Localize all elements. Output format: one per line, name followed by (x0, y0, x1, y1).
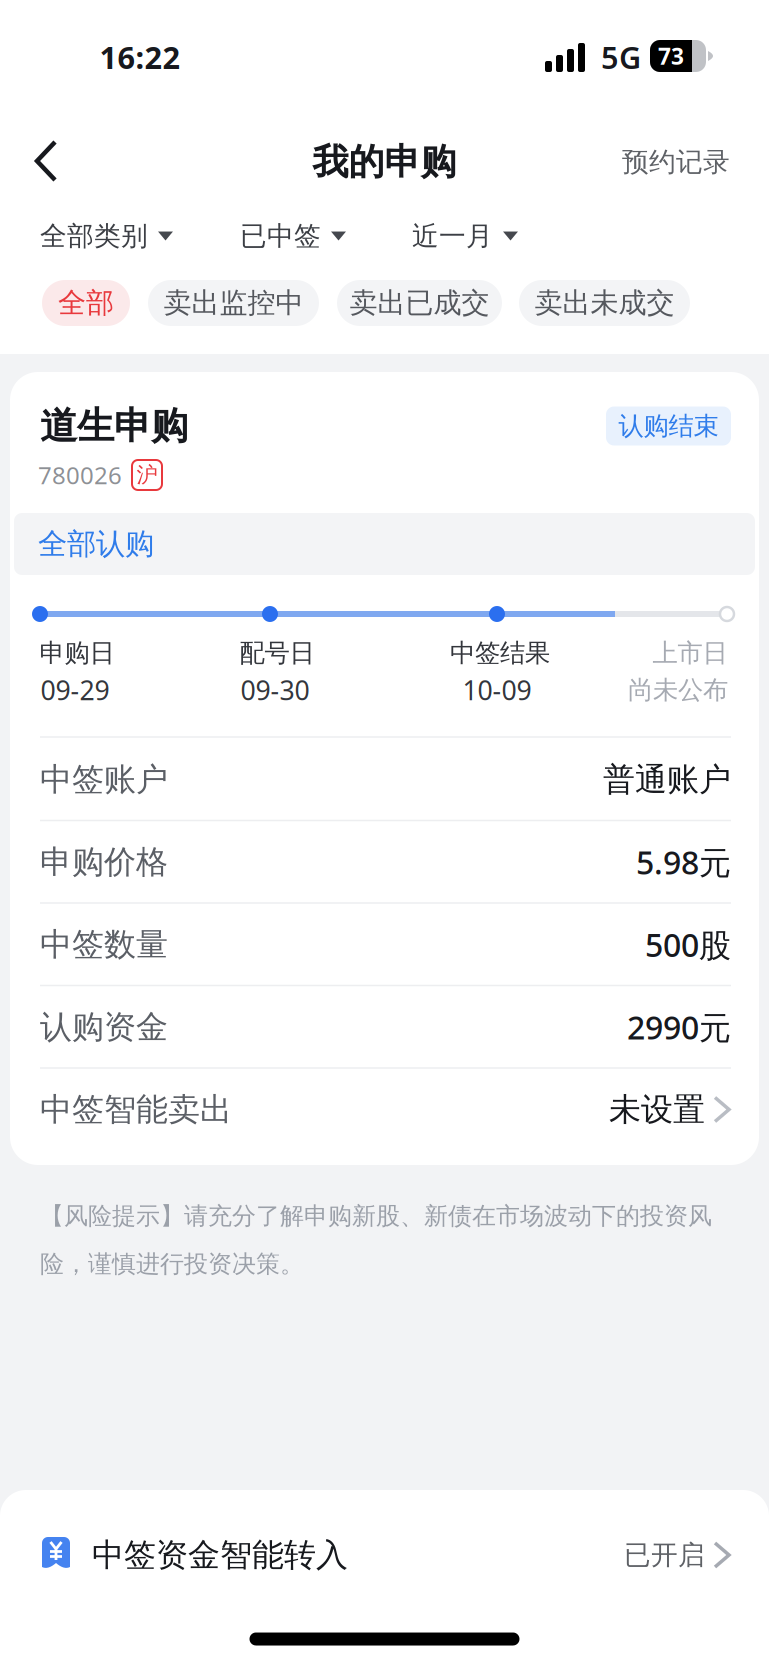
staticText: 全部类别 (40, 220, 148, 252)
button[interactable]: 卖出未成交 (519, 280, 690, 326)
staticText: 全部认购 (38, 526, 154, 562)
staticText: 险，谨慎进行投资决策。 (40, 1249, 304, 1279)
staticText: 中签资金智能转入 (92, 1535, 348, 1575)
staticText: 配号日 (239, 637, 314, 668)
staticText: 预约记录 (622, 146, 730, 178)
staticText: 已中签 (240, 220, 321, 252)
staticText: 2990元 (627, 1006, 731, 1048)
button[interactable]: 已中签 (240, 220, 346, 252)
staticText: 10-09 (462, 672, 531, 708)
staticText: 【风险提示】请充分了解申购新股、新债在市场波动下的投资风 (40, 1201, 712, 1231)
staticText: 中签智能卖出 (40, 1090, 232, 1129)
staticText: 已开启 (624, 1539, 705, 1571)
staticText: 认购结束 (618, 410, 718, 441)
button[interactable]: 中签智能卖出 (0, 1068, 769, 1150)
button[interactable]: Back (25, 130, 67, 192)
staticText: 申购日 (39, 637, 114, 668)
staticText: 沪 (136, 462, 157, 488)
staticText: 中签数量 (40, 925, 168, 964)
button[interactable]: 中签资金智能转入 (0, 1515, 769, 1595)
staticText: 5G (601, 37, 641, 77)
staticText: 我的申购 (312, 140, 456, 184)
staticText: 普通账户 (603, 760, 731, 799)
staticText: 尚未公布 (628, 674, 728, 705)
staticText: 780026 (38, 459, 122, 491)
staticText: 09-29 (40, 672, 109, 708)
button[interactable]: 预约记录 (622, 146, 730, 178)
staticText: 道生申购 (40, 403, 188, 449)
staticText: 中签账户 (40, 760, 168, 799)
staticText: 卖出未成交 (534, 286, 674, 320)
staticText: 中签结果 (450, 637, 550, 668)
button[interactable]: 全部 (42, 280, 130, 326)
staticText: 上市日 (652, 637, 727, 668)
staticText: 5.98元 (636, 841, 731, 883)
staticText: 500股 (645, 923, 731, 966)
staticText: 未设置 (609, 1090, 705, 1129)
staticText: 全部 (58, 286, 114, 320)
button[interactable]: 全部类别 (40, 220, 173, 252)
staticText: 09-30 (240, 672, 309, 708)
button[interactable]: 近一月 (412, 220, 518, 252)
staticText: 卖出已成交 (349, 286, 489, 320)
staticText: 近一月 (412, 220, 493, 252)
button[interactable]: 卖出已成交 (337, 280, 502, 326)
staticText: 16:22 (99, 37, 180, 77)
staticText: 73 (658, 41, 684, 71)
staticText: 申购价格 (40, 842, 168, 882)
button[interactable]: 卖出监控中 (148, 280, 319, 326)
staticText: 卖出监控中 (163, 286, 303, 320)
staticText: 认购资金 (40, 1007, 168, 1047)
